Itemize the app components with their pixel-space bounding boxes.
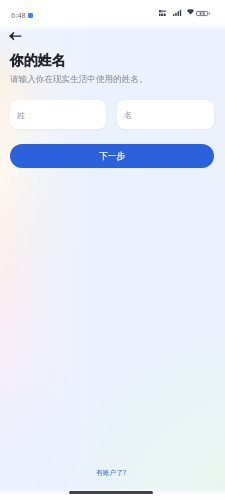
staticText: 你的姓名 xyxy=(10,52,66,69)
button[interactable]: Back xyxy=(2,26,22,46)
staticText: 有账户了? xyxy=(96,468,127,477)
staticText: 请输入你在现实生活中使用的姓名。 xyxy=(10,74,148,85)
button[interactable]: 下一步 xyxy=(10,144,214,168)
staticText: 姓 xyxy=(17,110,25,120)
staticText: 名 xyxy=(124,110,132,120)
staticText: 下一步 xyxy=(99,151,126,162)
button[interactable]: 姓 xyxy=(10,100,106,129)
button[interactable]: 有账户了? xyxy=(0,468,224,477)
button[interactable]: 名 xyxy=(117,100,214,129)
staticText: 6:48 xyxy=(11,10,26,20)
